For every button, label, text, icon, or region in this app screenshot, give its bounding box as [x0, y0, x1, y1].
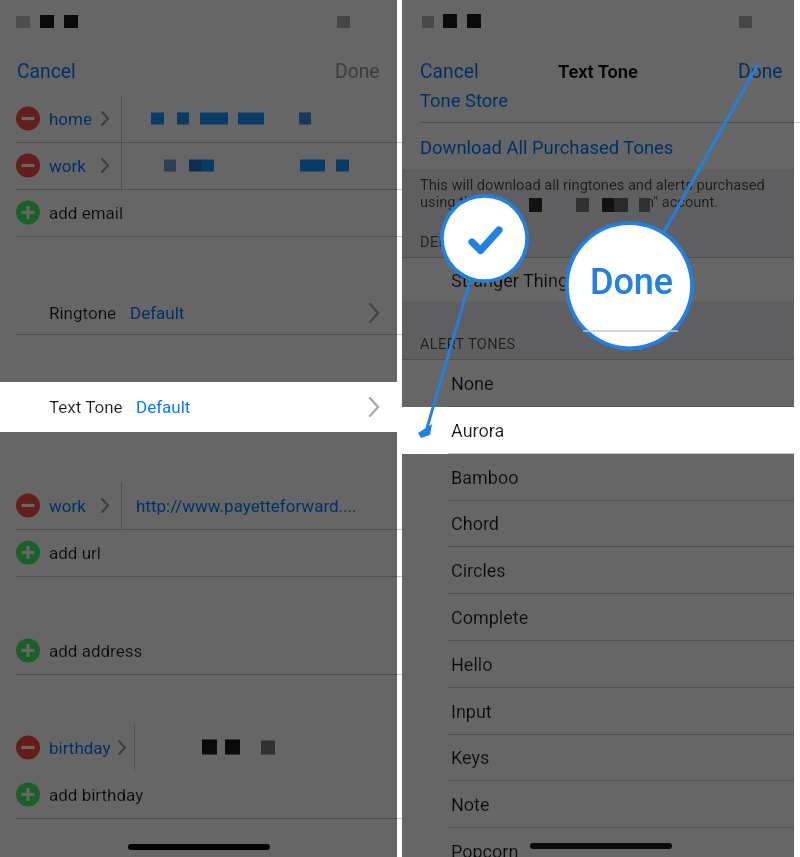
button[interactable]: home: [0, 95, 397, 142]
staticText: add address: [49, 641, 143, 661]
staticText: Stranger Things: [451, 270, 578, 291]
button[interactable]: Note: [402, 781, 794, 828]
button[interactable]: Chord: [402, 500, 794, 547]
staticText: Text Tone: [558, 61, 638, 82]
button[interactable]: add email: [0, 189, 397, 236]
button[interactable]: Done: [325, 60, 397, 83]
staticText: Download All Purchased Tones: [420, 137, 674, 159]
staticText: add url: [49, 543, 101, 563]
button[interactable]: Done: [728, 60, 794, 83]
button[interactable]: Cancel: [0, 60, 86, 83]
button[interactable]: Circles: [402, 547, 794, 594]
staticText: Text Tone: [49, 397, 123, 417]
button[interactable]: Download All Purchased Tones: [402, 130, 794, 166]
button[interactable]: work: [0, 482, 397, 529]
staticText: Default: [136, 397, 191, 417]
staticText: birthday: [49, 738, 111, 758]
button[interactable]: Aurora: [402, 407, 794, 454]
button[interactable]: Bamboo: [402, 454, 794, 501]
staticText: Aurora: [451, 420, 505, 441]
staticText: Bamboo: [451, 467, 519, 488]
staticText: Ringtone: [49, 303, 117, 323]
staticText: Done: [572, 261, 691, 303]
button[interactable]: birthday: [0, 724, 397, 771]
staticText: Circles: [451, 560, 506, 581]
button[interactable]: add birthday: [0, 771, 397, 818]
button[interactable]: add address: [0, 627, 397, 674]
staticText: ALERT TONES: [420, 336, 516, 353]
staticText: using th: [420, 193, 472, 210]
button[interactable]: Cancel: [402, 60, 489, 83]
button[interactable]: Ringtone: [0, 288, 397, 338]
button[interactable]: Hello: [402, 641, 794, 688]
button[interactable]: work: [0, 142, 397, 189]
button[interactable]: add url: [0, 529, 397, 576]
staticText: Input: [451, 701, 492, 722]
staticText: This will download all ringtones and ale…: [420, 176, 765, 193]
button[interactable]: Stranger Things: [402, 257, 794, 304]
staticText: add birthday: [49, 785, 144, 805]
staticText: Cancel: [17, 60, 76, 83]
staticText: Cancel: [420, 60, 479, 83]
staticText: Popcorn: [451, 841, 519, 857]
button[interactable]: Keys: [402, 734, 794, 781]
staticText: Note: [451, 794, 490, 815]
staticText: Tone Store: [420, 90, 509, 112]
button[interactable]: Tone Store: [402, 83, 794, 119]
staticText: add email: [49, 203, 124, 223]
button[interactable]: None: [402, 360, 794, 407]
staticText: work: [49, 156, 86, 176]
button[interactable]: Popcorn: [402, 828, 794, 857]
button[interactable]: Text Tone: [0, 382, 397, 432]
staticText: Done: [738, 60, 783, 83]
staticText: home: [49, 109, 92, 129]
button[interactable]: Complete: [402, 594, 794, 641]
staticText: Hello: [451, 654, 493, 675]
button[interactable]: Input: [402, 688, 794, 735]
staticText: Complete: [451, 607, 529, 628]
staticText: Default: [130, 303, 185, 323]
staticText: work: [49, 496, 86, 516]
staticText: None: [451, 373, 494, 394]
staticText: Keys: [451, 747, 490, 768]
staticText: Done: [335, 60, 380, 83]
staticText: Chord: [451, 513, 499, 534]
staticText: http://www.payetteforward....: [136, 496, 357, 516]
staticText: n" account.: [646, 193, 719, 210]
staticText: DEF: [420, 234, 447, 251]
